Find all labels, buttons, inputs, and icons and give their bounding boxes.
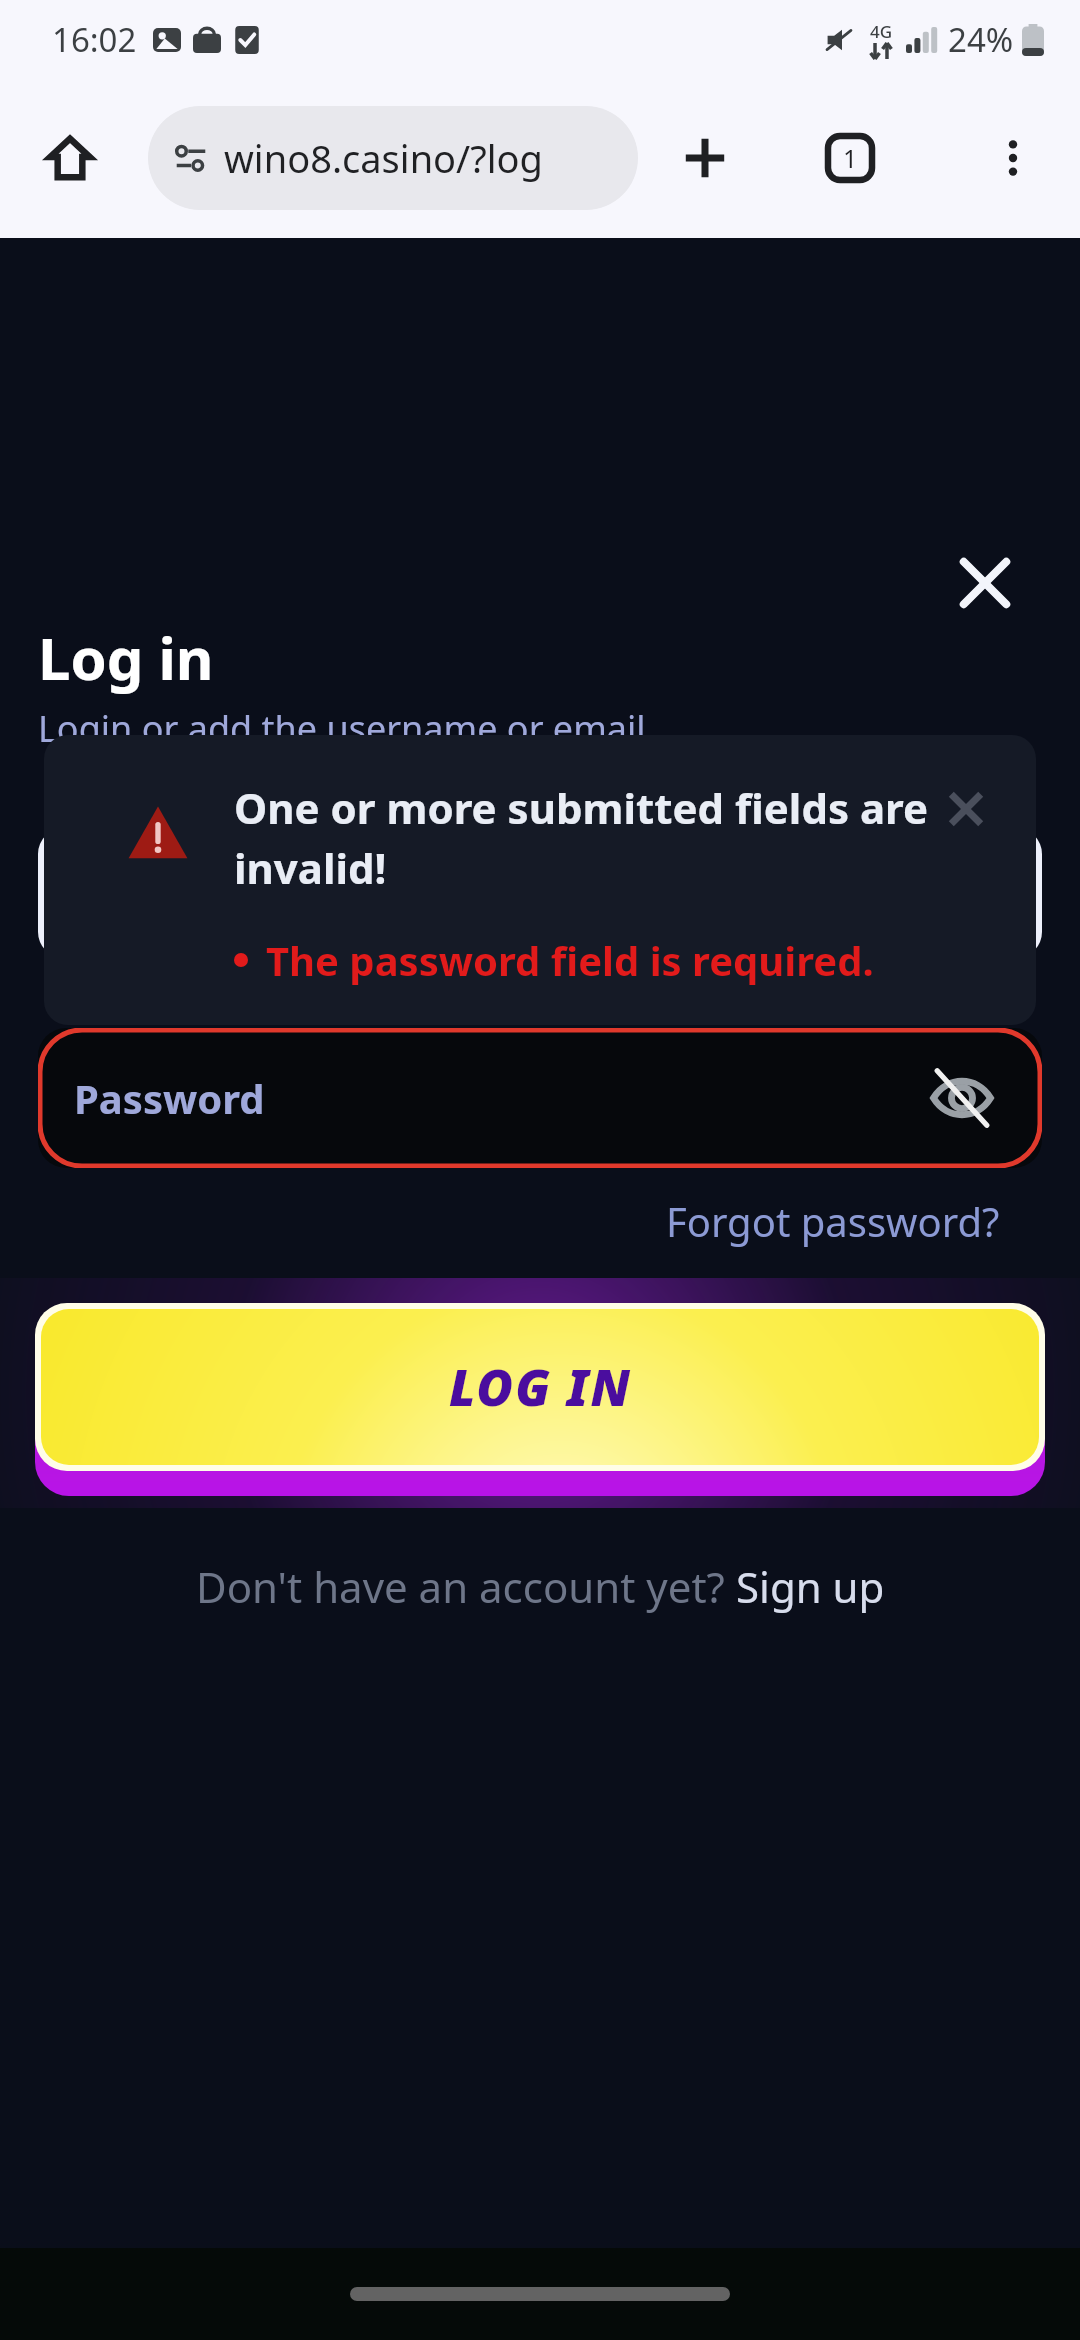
button[interactable]: Sign up — [736, 1558, 885, 1615]
staticText: One or more submitted fields are invalid… — [234, 779, 954, 896]
button[interactable]: New tab — [660, 113, 750, 203]
staticText: Password — [74, 1071, 265, 1125]
staticText: LOG IN — [449, 1353, 632, 1421]
staticText: Forgot password? — [666, 1194, 1000, 1248]
button[interactable]: Home — [32, 120, 108, 196]
button[interactable]: LOG IN — [35, 1303, 1045, 1471]
staticText: 4G — [870, 20, 893, 43]
staticText: Sign up — [736, 1558, 885, 1615]
staticText: 24% — [948, 17, 1014, 62]
staticText: The password field is required. — [266, 933, 874, 987]
staticText: Log in — [38, 618, 214, 697]
button[interactable] — [38, 828, 1042, 958]
button[interactable]: Password — [38, 1028, 1042, 1168]
button[interactable]: More options — [968, 113, 1058, 203]
button[interactable]: Forgot password? — [660, 1188, 1006, 1254]
staticText: 16:02 — [52, 17, 137, 62]
button[interactable]: wino8.casino/?log — [148, 106, 638, 210]
button[interactable]: Show password — [914, 1050, 1010, 1146]
staticText: Login or add the username or email — [38, 704, 646, 753]
button[interactable]: Tabs — [805, 113, 895, 203]
staticText: 1 — [843, 141, 858, 175]
button[interactable]: Close — [930, 528, 1040, 638]
staticText: wino8.casino/?log — [224, 132, 543, 184]
button[interactable]: Dismiss alert — [926, 769, 1006, 849]
staticText: Don't have an account yet? — [196, 1558, 736, 1615]
